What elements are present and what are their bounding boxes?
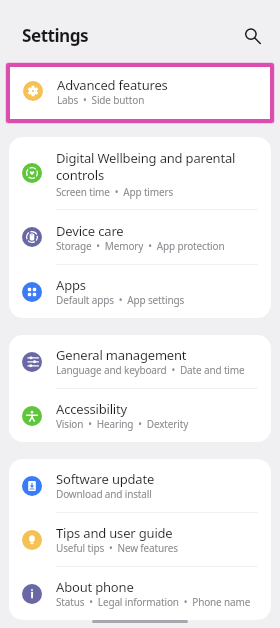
staticText: Advanced features — [57, 77, 168, 94]
button[interactable]: About phone — [9, 567, 271, 620]
staticText: Status • Legal information • Phone name — [56, 595, 251, 609]
staticText: Settings — [22, 24, 89, 47]
staticText: Accessibility — [56, 401, 127, 418]
button[interactable]: Apps — [9, 265, 271, 318]
button[interactable]: Tips and user guide — [9, 513, 271, 566]
staticText: Useful tips • New features — [56, 541, 178, 555]
staticText: Default apps • App settings — [56, 293, 185, 307]
staticText: Download and install — [56, 487, 152, 501]
staticText: About phone — [56, 579, 134, 596]
staticText: Apps — [56, 277, 86, 294]
staticText: Labs • Side button — [57, 93, 145, 107]
staticText: Digital Wellbeing and parental controls — [56, 150, 236, 184]
button[interactable]: Software update — [9, 459, 271, 512]
staticText: Storage • Memory • App protection — [56, 239, 225, 253]
button[interactable]: Advanced features — [10, 65, 270, 117]
staticText: Screen time • App timers — [56, 185, 174, 199]
staticText: General management — [56, 347, 187, 364]
staticText: Device care — [56, 223, 124, 240]
staticText: Vision • Hearing • Dexterity — [56, 417, 189, 431]
button[interactable]: Digital Wellbeing and parental controls — [9, 137, 271, 209]
staticText: Language and keyboard • Date and time — [56, 363, 245, 377]
staticText: Software update — [56, 471, 155, 488]
staticText: Tips and user guide — [56, 525, 173, 542]
button[interactable]: General management — [9, 335, 271, 388]
button[interactable]: Search — [235, 17, 265, 47]
button[interactable]: Accessibility — [9, 389, 271, 442]
button[interactable]: Device care — [9, 210, 271, 264]
